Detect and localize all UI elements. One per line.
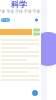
staticText: 开始 xyxy=(1,17,9,22)
staticText: 字体 xyxy=(6,9,14,14)
button[interactable]: 字体 xyxy=(6,9,15,14)
button[interactable]: More xyxy=(35,18,38,21)
staticText: 科学 xyxy=(11,0,27,9)
button[interactable]: 字体 xyxy=(15,9,23,14)
button[interactable]: 字体 xyxy=(0,9,6,14)
button[interactable]: Compose xyxy=(32,90,38,96)
staticText: 字体 xyxy=(0,9,5,14)
button[interactable]: 字体 xyxy=(32,9,41,14)
button[interactable]: 开始 xyxy=(1,18,10,22)
staticText: 字体 xyxy=(33,9,41,14)
staticText: 字体 xyxy=(15,9,23,14)
button[interactable]: 字体 xyxy=(23,9,32,14)
staticText: 字体 xyxy=(24,9,32,14)
